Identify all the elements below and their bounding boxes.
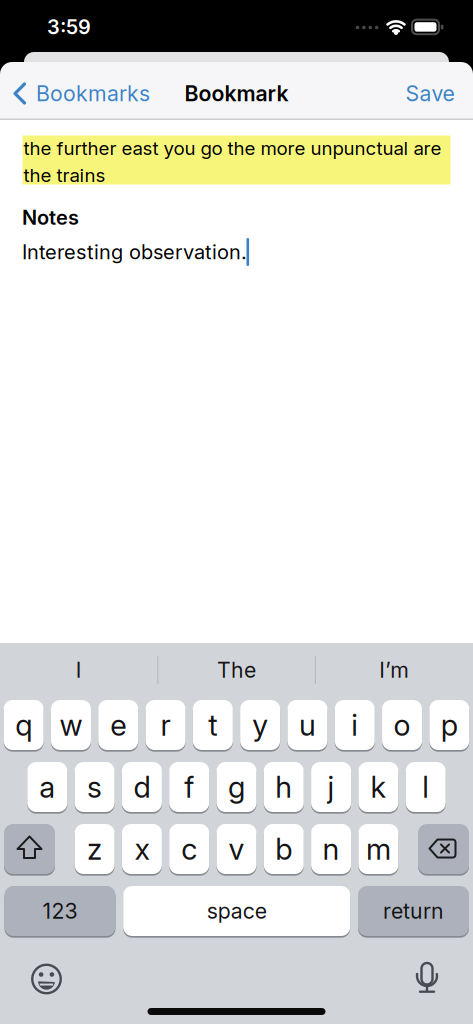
button[interactable]: z	[75, 823, 115, 875]
button[interactable]: o	[382, 699, 422, 751]
button[interactable]: a	[27, 761, 67, 813]
staticText: x	[134, 832, 149, 866]
button[interactable]: Dictate	[410, 961, 444, 995]
staticText: Interesting observation.	[22, 240, 247, 264]
staticText: 3:59	[47, 15, 91, 39]
button[interactable]: s	[75, 761, 115, 813]
button[interactable]: f	[169, 761, 209, 813]
button[interactable]: p	[429, 699, 469, 751]
button[interactable]: m	[358, 823, 398, 875]
button[interactable]: w	[51, 699, 91, 751]
staticText: I’m	[379, 657, 409, 683]
staticText: s	[87, 770, 102, 804]
staticText: w	[59, 708, 82, 742]
staticText: 123	[42, 898, 77, 924]
staticText: space	[207, 898, 267, 924]
button[interactable]: q	[4, 699, 44, 751]
staticText: o	[393, 708, 410, 742]
staticText: g	[228, 770, 245, 804]
button[interactable]: Save	[405, 78, 454, 108]
button[interactable]: b	[264, 823, 304, 875]
button[interactable]: Shift	[4, 823, 55, 875]
staticText: m	[366, 832, 391, 866]
staticText: z	[87, 832, 102, 866]
button[interactable]: e	[98, 699, 138, 751]
staticText: h	[275, 770, 292, 804]
staticText: i	[351, 708, 358, 742]
button[interactable]: return	[358, 885, 469, 937]
button[interactable]: space	[123, 885, 350, 937]
staticText: k	[370, 770, 386, 804]
staticText: t	[208, 708, 217, 742]
button[interactable]: x	[122, 823, 162, 875]
staticText: l	[422, 770, 429, 804]
button[interactable]: k	[358, 761, 398, 813]
staticText: u	[299, 708, 316, 742]
button[interactable]: j	[311, 761, 351, 813]
button[interactable]: d	[122, 761, 162, 813]
button[interactable]: l	[406, 761, 446, 813]
staticText: q	[15, 708, 32, 742]
button[interactable]: The	[166, 647, 306, 693]
staticText: n	[323, 832, 340, 866]
staticText: f	[184, 770, 194, 804]
button[interactable]: Bookmarks	[13, 78, 150, 108]
staticText: a	[39, 770, 55, 804]
button[interactable]: v	[216, 823, 256, 875]
button[interactable]: r	[145, 699, 185, 751]
button[interactable]: Delete	[418, 823, 469, 875]
staticText: the trains	[23, 164, 105, 186]
staticText: j	[328, 770, 335, 804]
staticText: Bookmarks	[36, 81, 150, 106]
staticText: Save	[405, 81, 454, 106]
staticText: return	[383, 898, 444, 924]
button[interactable]: y	[240, 699, 280, 751]
button[interactable]: I	[9, 647, 149, 693]
staticText: y	[252, 708, 268, 742]
staticText: The	[217, 657, 256, 683]
button[interactable]: t	[193, 699, 233, 751]
button[interactable]: Emoji	[29, 962, 63, 996]
staticText: e	[110, 708, 126, 742]
staticText: c	[181, 832, 197, 866]
staticText: r	[160, 708, 170, 742]
staticText: p	[441, 708, 458, 742]
staticText: v	[228, 832, 244, 866]
button[interactable]: I’m	[324, 647, 464, 693]
button[interactable]: c	[169, 823, 209, 875]
button[interactable]: g	[216, 761, 256, 813]
staticText: the further east you go the more unpunct…	[23, 137, 441, 159]
button[interactable]: 123	[4, 885, 115, 937]
staticText: I	[76, 657, 82, 683]
button[interactable]: u	[287, 699, 327, 751]
button[interactable]: i	[335, 699, 375, 751]
staticText: Bookmark	[184, 81, 288, 106]
button[interactable]: h	[264, 761, 304, 813]
button[interactable]: n	[311, 823, 351, 875]
staticText: Notes	[22, 206, 79, 229]
staticText: d	[133, 770, 150, 804]
staticText: b	[275, 832, 292, 866]
